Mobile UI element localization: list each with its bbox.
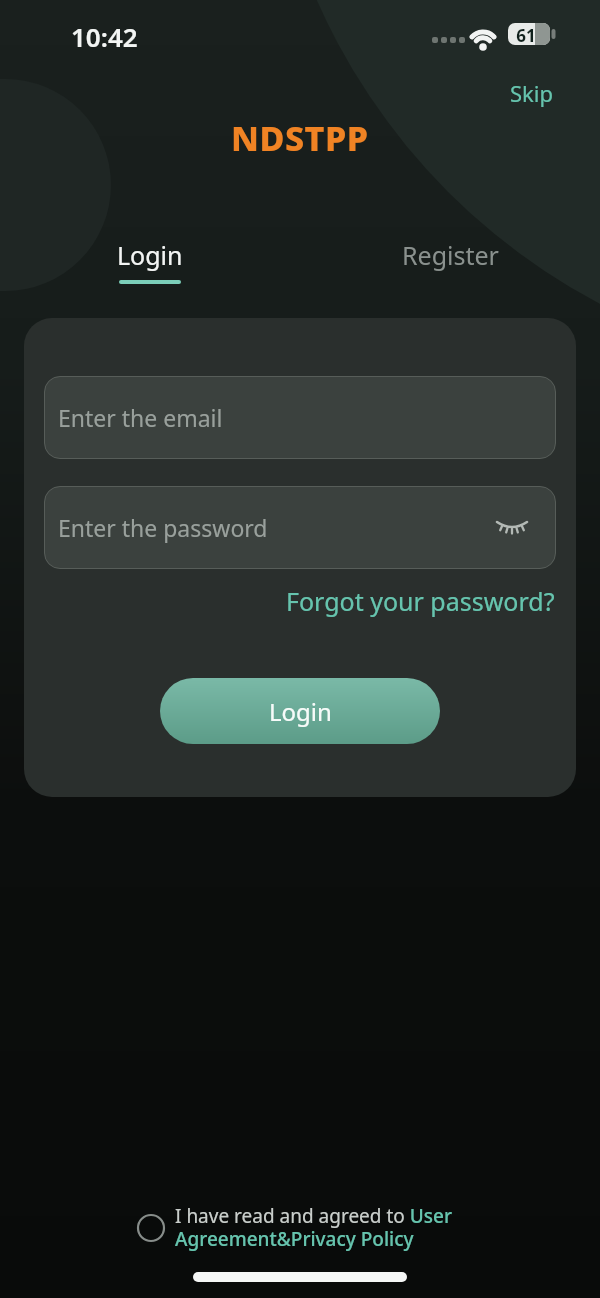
button[interactable]: Forgot your password? — [286, 584, 555, 618]
staticText: Enter the email — [58, 402, 223, 433]
staticText: Login — [117, 238, 183, 272]
staticText: 61 — [508, 24, 544, 47]
button[interactable]: Login — [0, 238, 300, 290]
button[interactable]: Enter the email — [44, 376, 556, 459]
staticText: 10:42 — [71, 19, 138, 54]
button[interactable]: Register — [300, 238, 600, 290]
staticText: Forgot your password? — [286, 584, 555, 618]
staticText: Register — [402, 238, 499, 272]
button[interactable]: Enter the password — [44, 486, 556, 569]
button[interactable]: Login — [160, 678, 440, 744]
staticText: I have read and agreed to User Agreement… — [175, 1203, 452, 1252]
staticText: Login — [269, 695, 332, 728]
staticText: NDSTPP — [231, 115, 369, 161]
staticText: Enter the password — [58, 512, 268, 543]
button[interactable]: I have read and agreed to User Agreement… — [136, 1203, 452, 1252]
staticText: Skip — [510, 78, 554, 108]
button[interactable]: Skip — [510, 78, 554, 108]
